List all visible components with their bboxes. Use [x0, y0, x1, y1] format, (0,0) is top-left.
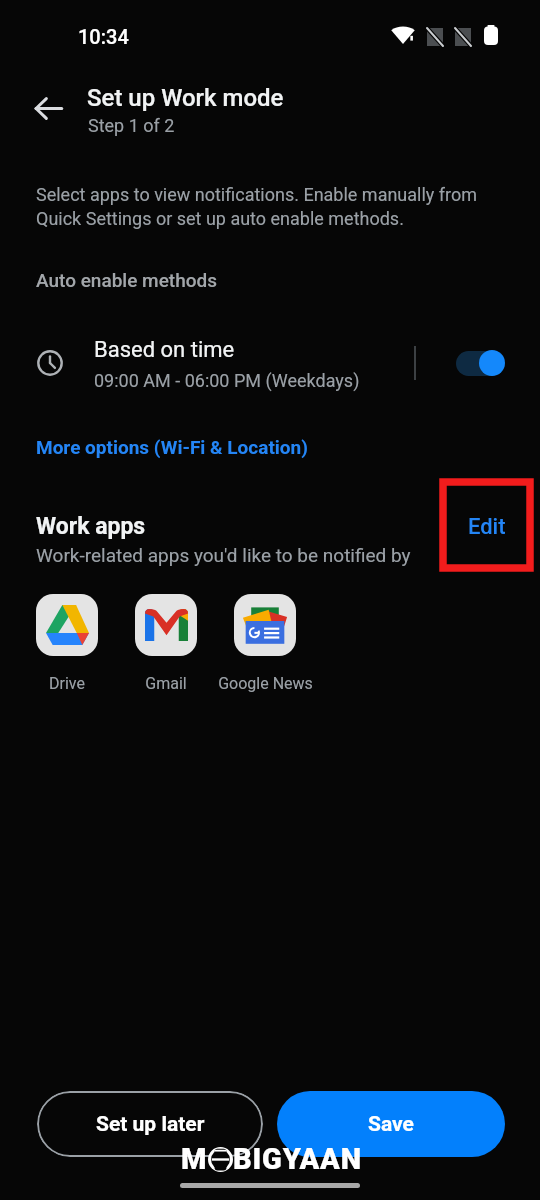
staticText: Auto enable methods	[36, 269, 217, 291]
staticText: Save	[368, 1112, 414, 1137]
staticText: Based on time	[94, 337, 235, 363]
button[interactable]: Based on time	[0, 330, 540, 396]
staticText: 10:34	[78, 25, 129, 48]
button[interactable]: Edit	[440, 498, 533, 556]
button[interactable]	[36, 594, 98, 656]
button[interactable]: More options (Wi-Fi & Location)	[36, 436, 308, 458]
staticText: Google News	[218, 674, 313, 693]
button[interactable]	[135, 594, 197, 656]
button[interactable]: Toggle based on time	[447, 338, 513, 388]
staticText: Gmail	[145, 674, 187, 693]
button[interactable]: Back	[24, 85, 72, 133]
staticText: Edit	[468, 514, 506, 540]
staticText: BIGYAAN	[233, 1142, 362, 1176]
staticText: Step 1 of 2	[88, 115, 175, 136]
staticText: Work apps	[36, 513, 146, 540]
staticText: 09:00 AM - 06:00 PM (Weekdays)	[94, 370, 360, 391]
button[interactable]: Save	[277, 1091, 505, 1157]
staticText: Set up later	[96, 1112, 205, 1137]
staticText: Select apps to view notifications. Enabl…	[36, 184, 478, 229]
staticText: More options (Wi-Fi & Location)	[36, 436, 308, 458]
button[interactable]: Set up later	[37, 1091, 263, 1157]
staticText: Drive	[49, 674, 85, 693]
staticText: Set up Work mode	[87, 84, 284, 112]
staticText: M	[181, 1142, 208, 1176]
button[interactable]	[234, 594, 296, 656]
staticText: Work-related apps you'd like to be notif…	[36, 544, 411, 566]
